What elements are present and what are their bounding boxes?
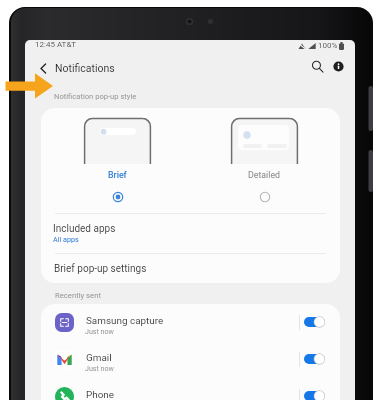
button[interactable]: Included apps bbox=[41, 214, 340, 254]
button[interactable]: Samsung capture bbox=[41, 304, 340, 341]
staticText: Notifications bbox=[55, 62, 115, 74]
button[interactable]: Back bbox=[33, 58, 53, 78]
button[interactable]: Toggle notifications for Gmail bbox=[304, 353, 325, 365]
button[interactable]: Toggle notifications for Samsung capture bbox=[304, 316, 325, 328]
staticText: Notification pop-up style bbox=[54, 92, 137, 101]
staticText: All apps bbox=[53, 235, 79, 243]
staticText: Just now bbox=[85, 364, 114, 372]
staticText: Gmail bbox=[86, 352, 112, 364]
button[interactable]: Detailed bbox=[231, 118, 298, 208]
button[interactable]: Search bbox=[307, 56, 327, 76]
staticText: Included apps bbox=[53, 223, 116, 235]
staticText: Recently sent bbox=[55, 291, 101, 300]
staticText: 100% bbox=[318, 41, 338, 50]
staticText: Samsung capture bbox=[86, 315, 164, 327]
staticText: Brief pop-up settings bbox=[54, 263, 147, 275]
button[interactable]: Information bbox=[328, 56, 348, 76]
button[interactable]: Toggle notifications for Phone bbox=[304, 390, 325, 400]
button[interactable]: Brief bbox=[84, 118, 151, 208]
staticText: Brief bbox=[108, 170, 127, 180]
button[interactable]: Brief pop-up settings bbox=[41, 254, 340, 283]
button[interactable]: Phone bbox=[41, 378, 340, 400]
staticText: Just now bbox=[85, 327, 114, 335]
staticText: Phone bbox=[86, 389, 115, 400]
button[interactable]: Gmail bbox=[41, 341, 340, 378]
staticText: 12:45 AT&T bbox=[35, 40, 77, 49]
staticText: Detailed bbox=[248, 170, 281, 180]
